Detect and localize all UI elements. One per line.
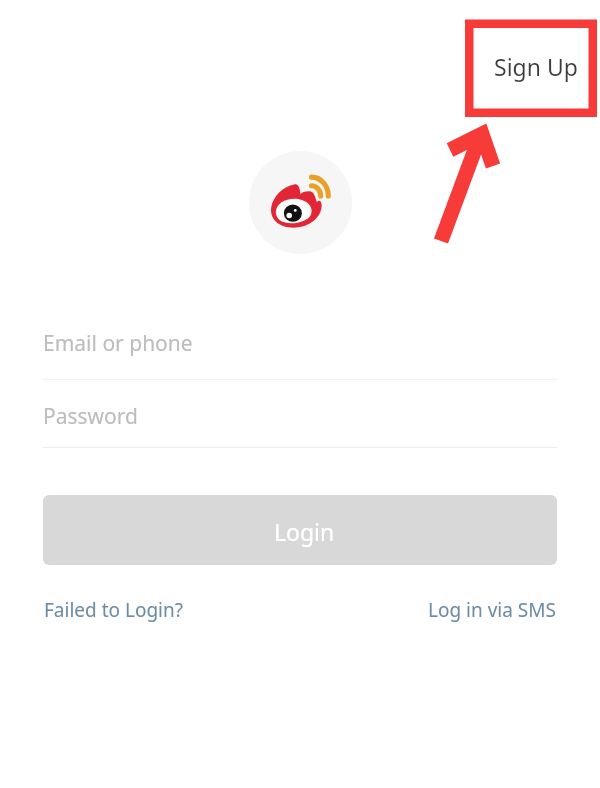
other: Weibo logo [249, 151, 352, 254]
button[interactable]: Sign Up [484, 45, 588, 88]
button[interactable]: Failed to Login? [37, 591, 190, 629]
button[interactable]: Login [43, 495, 557, 565]
button[interactable]: Password [43, 391, 557, 447]
staticText: Sign Up [494, 51, 578, 82]
button[interactable]: Log in via SMS [421, 591, 563, 629]
button[interactable]: Email or phone [43, 318, 557, 379]
staticText: Failed to Login? [44, 597, 183, 623]
staticText: Login [274, 516, 335, 547]
staticText: Password [43, 402, 138, 431]
staticText: Email or phone [43, 329, 193, 358]
staticText: Log in via SMS [428, 597, 556, 623]
